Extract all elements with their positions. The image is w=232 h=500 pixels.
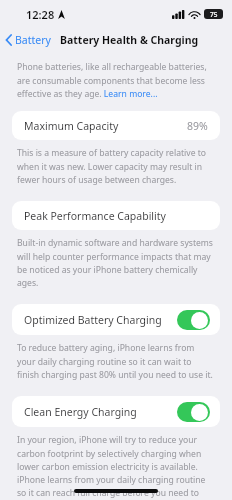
staticText: Battery	[15, 33, 51, 47]
button[interactable]: Maximum Capacity	[12, 111, 220, 140]
staticText: In your region, iPhone will try to reduc…	[17, 434, 215, 500]
button[interactable]: Optimized Battery Charging	[12, 304, 220, 335]
button[interactable]: Battery	[0, 30, 57, 50]
staticText: This is a measure of battery capacity re…	[17, 147, 215, 185]
staticText: To reduce battery aging, iPhone learns f…	[17, 342, 215, 380]
button[interactable]: Toggle on	[177, 402, 210, 422]
staticText: Built-in dynamic software and hardware s…	[17, 237, 215, 288]
staticText: Peak Performance Capability	[24, 209, 166, 223]
button[interactable]: Toggle on	[177, 310, 210, 330]
staticText: Battery Health & Charging	[60, 33, 199, 47]
button[interactable]: Clean Energy Charging	[12, 396, 220, 427]
staticText: Maximum Capacity	[24, 119, 119, 133]
staticText: 12:28	[26, 7, 55, 22]
staticText: Optimized Battery Charging	[24, 313, 162, 327]
staticText: Phone batteries, like all rechargeable b…	[17, 61, 215, 99]
button[interactable]: Peak Performance Capability	[12, 201, 220, 230]
staticText: 75	[210, 10, 218, 19]
staticText: 89%	[187, 119, 208, 133]
staticText: Clean Energy Charging	[24, 405, 137, 419]
